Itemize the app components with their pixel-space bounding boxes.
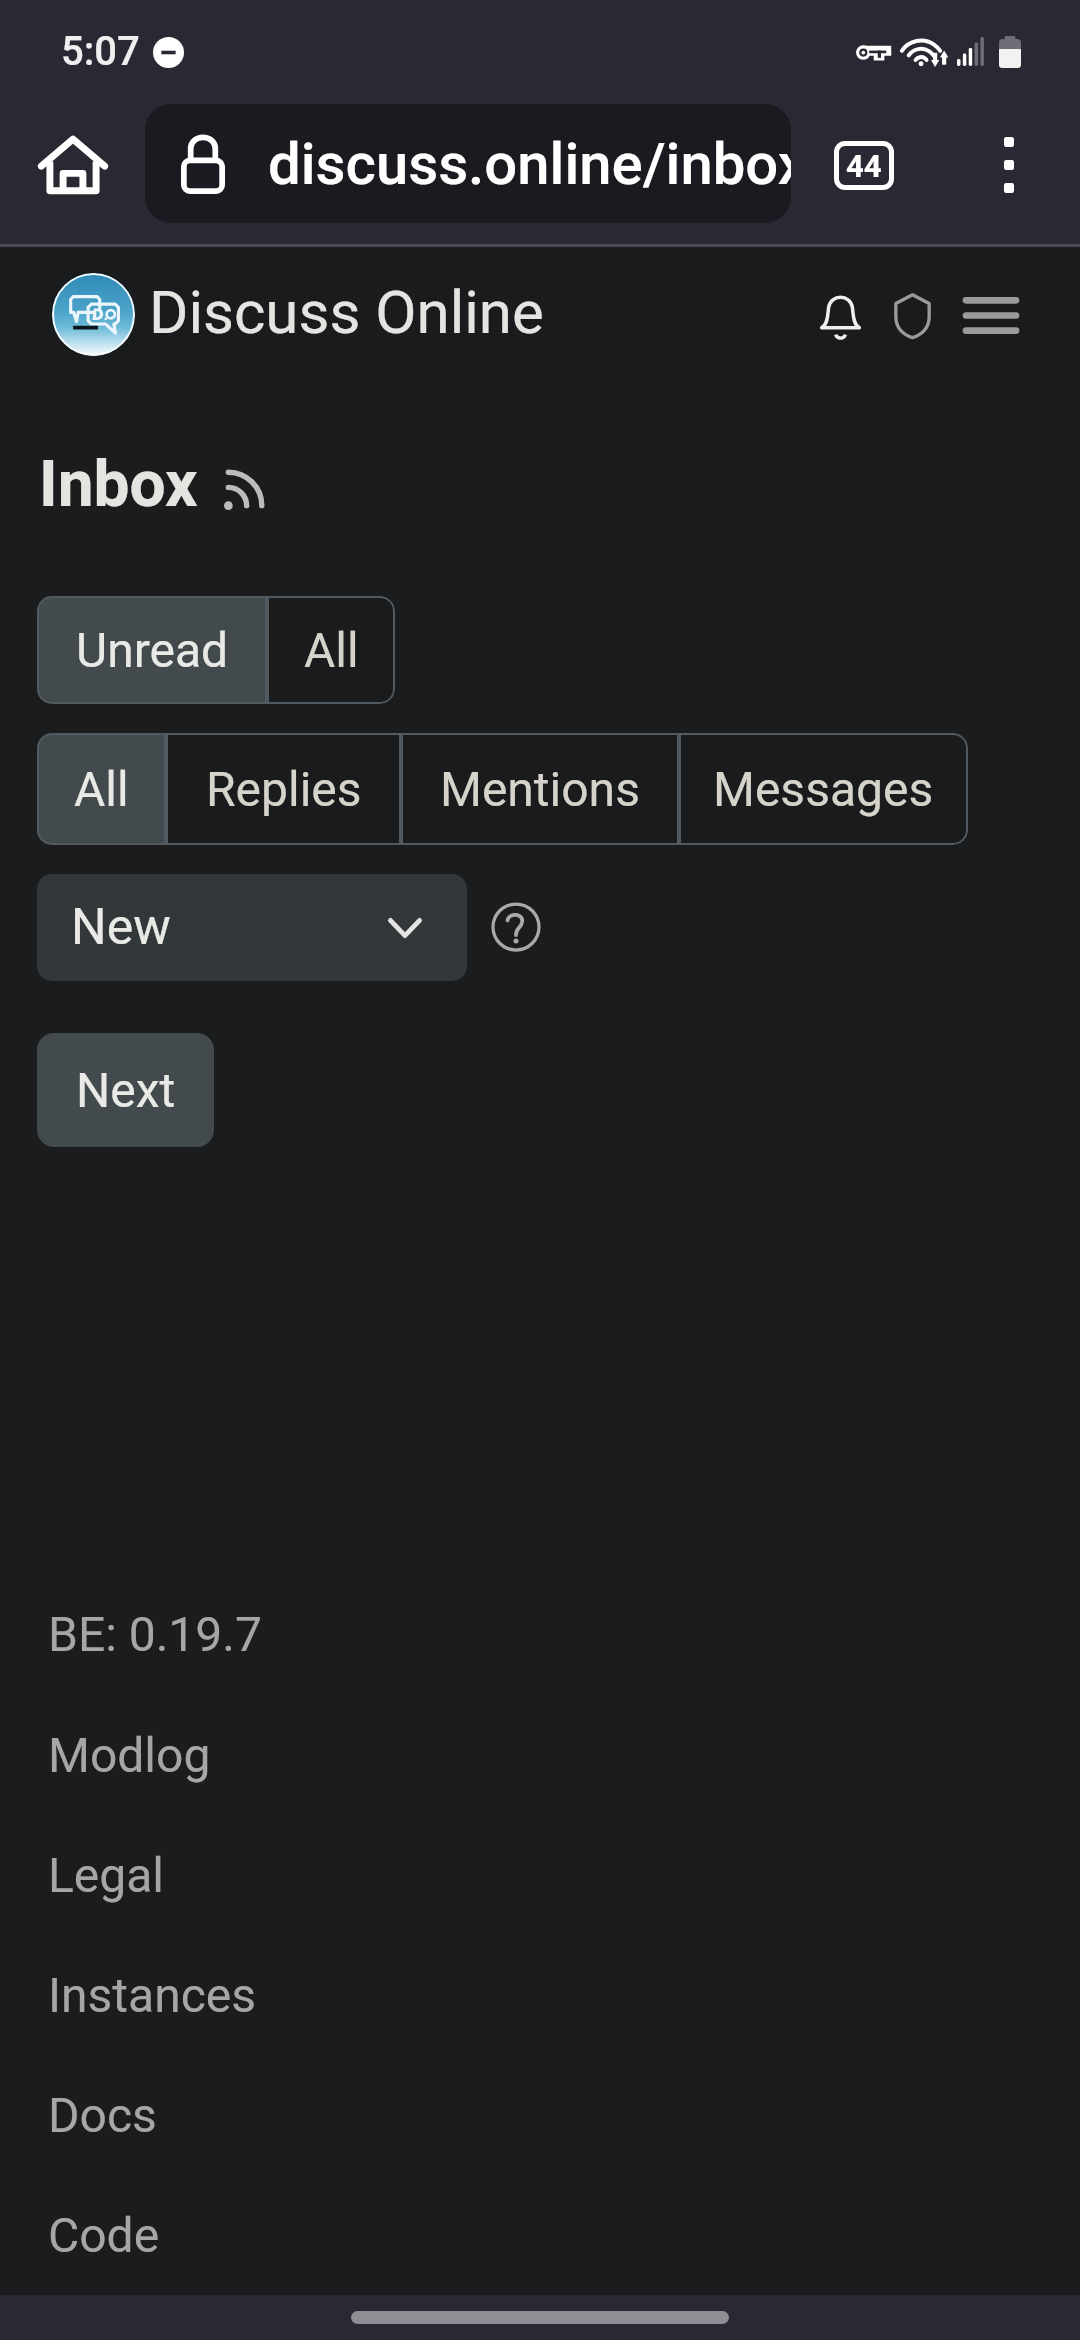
button[interactable]: discuss.online/inbox (145, 104, 791, 223)
button[interactable]: Instances (0, 1947, 1080, 2043)
staticText: New (71, 898, 171, 957)
staticText: discuss.online/inbox (268, 130, 791, 198)
button[interactable]: Reports (864, 268, 960, 364)
button[interactable]: Home (24, 116, 121, 213)
staticText: All (304, 622, 359, 678)
button[interactable]: Messages (679, 733, 968, 845)
button[interactable]: Replies (166, 733, 401, 845)
staticText: Unread (76, 622, 229, 678)
button[interactable]: Mentions (401, 733, 679, 845)
staticText: Mentions (440, 761, 640, 817)
staticText: All (74, 761, 129, 817)
button[interactable]: All (37, 733, 166, 845)
button[interactable]: New (37, 874, 467, 981)
staticText: Legal (48, 1847, 165, 1903)
button[interactable]: More options (962, 118, 1056, 212)
button[interactable]: Modlog (0, 1707, 1080, 1803)
button[interactable]: Unread (37, 596, 267, 704)
button[interactable]: Sorting help (486, 897, 546, 957)
staticText: Messages (713, 761, 934, 817)
button[interactable]: Menu (943, 267, 1039, 363)
staticText: BE: 0.19.7 (48, 1606, 262, 1662)
button[interactable]: Discuss Online (52, 273, 544, 356)
staticText: Code (48, 2207, 160, 2263)
staticText: Discuss Online (149, 277, 544, 347)
staticText: 5:07 (61, 28, 140, 75)
staticText: Inbox (39, 447, 198, 522)
staticText: Replies (206, 761, 362, 817)
staticText: 44 (846, 148, 882, 184)
button[interactable]: Unread messages (792, 267, 888, 363)
button[interactable]: Next (37, 1033, 214, 1147)
button[interactable]: All (267, 596, 395, 704)
button[interactable]: Subscribe to RSS feed (214, 462, 272, 520)
staticText: Instances (48, 1967, 257, 2023)
staticText: Modlog (48, 1727, 211, 1783)
staticText: Docs (48, 2087, 157, 2143)
button[interactable]: Code (0, 2187, 1080, 2283)
button[interactable]: BE: 0.19.7 (0, 1586, 1080, 1682)
button[interactable]: Legal (0, 1827, 1080, 1923)
staticText: Next (76, 1062, 176, 1118)
button[interactable]: Docs (0, 2067, 1080, 2163)
button[interactable]: Tabs, 44 open (812, 118, 916, 212)
